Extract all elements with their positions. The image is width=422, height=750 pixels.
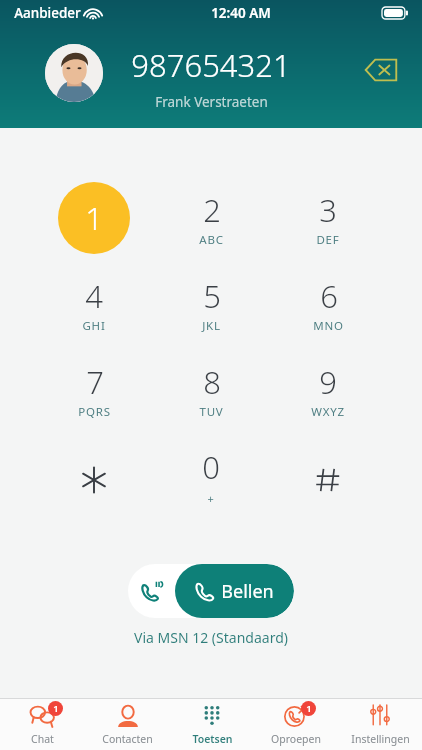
staticText: Instellingen [351, 732, 410, 746]
button[interactable]: 6 [292, 268, 364, 340]
staticText: Via MSN 12 (Standaard) [134, 628, 288, 647]
staticText: 1 [53, 702, 59, 715]
staticText: ABC [199, 232, 224, 248]
button[interactable]: 2 [175, 182, 247, 254]
button[interactable]: 3 [292, 182, 364, 254]
button[interactable]: 8 [175, 354, 247, 426]
staticText: 6 [320, 275, 338, 317]
staticText: 2 [203, 189, 221, 231]
staticText: PQRS [78, 404, 111, 420]
staticText: Aanbieder [14, 4, 81, 22]
staticText: Toetsen [192, 732, 233, 746]
button[interactable] [58, 440, 130, 512]
button[interactable]: Toetsen [170, 699, 254, 750]
staticText: DEF [316, 232, 340, 248]
button[interactable]: 1 [58, 182, 130, 254]
staticText: MNO [313, 318, 344, 334]
staticText: Chat [31, 732, 54, 746]
button[interactable]: 9 [292, 354, 364, 426]
staticText: 1 [85, 197, 103, 239]
button[interactable]: 5 [175, 268, 247, 340]
staticText: + [207, 491, 215, 506]
staticText: Frank Verstraeten [155, 93, 268, 111]
staticText: 1 [306, 702, 312, 715]
button[interactable]: 1 [254, 699, 338, 750]
staticText: 3 [319, 189, 337, 231]
button[interactable]: 7 [58, 354, 130, 426]
button[interactable]: 1 [0, 699, 85, 750]
staticText: 4 [85, 275, 103, 317]
staticText: TUV [199, 404, 224, 420]
button[interactable]: Backspace [360, 52, 404, 88]
staticText: WXYZ [311, 404, 345, 420]
staticText: 5 [203, 275, 221, 317]
staticText: 0 [202, 446, 220, 488]
button[interactable]: Contacten [85, 699, 170, 750]
button[interactable]: 0 [175, 440, 247, 512]
staticText: 9 [319, 361, 337, 403]
staticText: JKL [202, 318, 221, 334]
staticText: GHI [82, 318, 106, 334]
button[interactable] [292, 440, 364, 512]
staticText: 987654321 [131, 44, 291, 86]
staticText: 8 [203, 361, 221, 403]
staticText: 7 [86, 361, 104, 403]
button[interactable]: Bellen [128, 564, 294, 618]
staticText: Oproepen [271, 732, 321, 746]
staticText: Bellen [221, 579, 274, 604]
button[interactable]: 4 [58, 268, 130, 340]
button[interactable]: Instellingen [338, 699, 422, 750]
staticText: Contacten [102, 732, 153, 746]
staticText: 12:40 AM [211, 4, 271, 22]
